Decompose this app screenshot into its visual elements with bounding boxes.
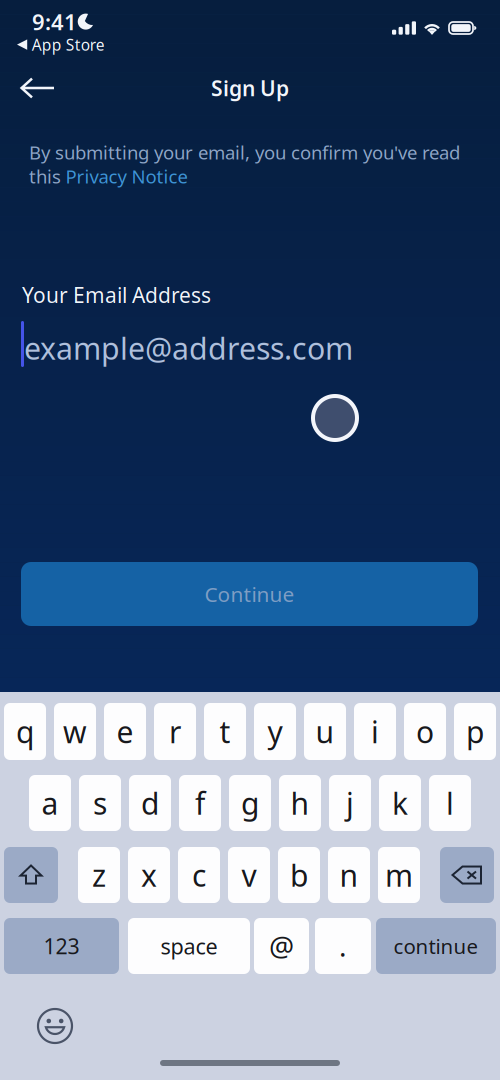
staticText: 9:41 — [32, 7, 77, 36]
button[interactable]: m — [378, 847, 420, 903]
staticText: w — [63, 712, 87, 751]
staticText: Privacy Notice — [65, 164, 187, 189]
staticText: j — [346, 783, 354, 823]
staticText: this — [29, 164, 61, 189]
staticText: f — [195, 783, 205, 823]
button[interactable]: j — [329, 775, 371, 831]
button[interactable]: n — [328, 847, 370, 903]
button[interactable]: Privacy Notice — [65, 164, 187, 189]
button[interactable]: b — [278, 847, 320, 903]
button[interactable]: s — [79, 775, 121, 831]
staticText: r — [169, 712, 181, 751]
staticText: y — [267, 712, 282, 751]
staticText: v — [241, 855, 256, 895]
button[interactable]: e — [104, 703, 146, 760]
button[interactable]: h — [279, 775, 321, 831]
button[interactable]: a — [29, 775, 71, 831]
button[interactable]: App Store — [17, 34, 105, 55]
button[interactable]: z — [78, 847, 120, 903]
staticText: g — [241, 783, 259, 823]
staticText: l — [446, 783, 454, 823]
staticText: . — [339, 927, 347, 965]
staticText: By submitting your email, you confirm yo… — [29, 140, 460, 165]
button[interactable]: x — [128, 847, 170, 903]
button[interactable]: o — [404, 703, 446, 760]
staticText: a — [41, 783, 58, 823]
button[interactable]: t — [204, 703, 246, 760]
staticText: t — [219, 712, 230, 751]
staticText: Sign Up — [211, 74, 289, 102]
button[interactable]: Delete — [440, 847, 494, 903]
button[interactable]: v — [228, 847, 270, 903]
button[interactable]: p — [454, 703, 496, 760]
staticText: k — [392, 783, 408, 823]
button[interactable]: . — [315, 918, 371, 974]
button[interactable]: continue — [376, 918, 496, 974]
button[interactable]: c — [178, 847, 220, 903]
staticText: b — [290, 855, 308, 895]
button[interactable]: w — [54, 703, 96, 760]
button[interactable]: space — [128, 918, 250, 974]
button[interactable]: 123 — [4, 918, 119, 974]
staticText: s — [93, 783, 107, 823]
staticText: @ — [269, 927, 294, 965]
staticText: Continue — [204, 580, 294, 608]
button[interactable]: Back — [14, 68, 62, 108]
button[interactable]: l — [429, 775, 471, 831]
button[interactable]: Emoji keyboard — [37, 1008, 73, 1044]
staticText: d — [141, 783, 159, 823]
staticText: c — [192, 855, 206, 895]
button[interactable]: f — [179, 775, 221, 831]
button[interactable]: k — [379, 775, 421, 831]
staticText: z — [92, 855, 106, 895]
staticText: h — [290, 783, 309, 823]
button[interactable]: q — [4, 703, 46, 760]
button[interactable]: g — [229, 775, 271, 831]
staticText: i — [371, 712, 379, 751]
button[interactable]: Continue — [21, 562, 478, 626]
staticText: u — [315, 712, 334, 751]
staticText: n — [339, 855, 358, 895]
staticText: Your Email Address — [22, 281, 211, 309]
staticText: App Store — [32, 34, 105, 55]
staticText: p — [466, 712, 484, 751]
staticText: x — [141, 855, 157, 895]
button[interactable]: r — [154, 703, 196, 760]
button[interactable]: i — [354, 703, 396, 760]
staticText: continue — [393, 932, 478, 960]
staticText: space — [160, 932, 217, 960]
staticText: m — [385, 855, 413, 895]
staticText: q — [16, 712, 34, 751]
staticText: 123 — [43, 932, 79, 960]
staticText: e — [116, 712, 133, 751]
button[interactable]: y — [254, 703, 296, 760]
staticText: example@address.com — [24, 328, 353, 368]
button[interactable]: d — [129, 775, 171, 831]
button[interactable]: @ — [254, 918, 309, 974]
staticText: o — [416, 712, 434, 751]
button[interactable]: u — [304, 703, 346, 760]
button[interactable]: Shift — [4, 847, 58, 903]
